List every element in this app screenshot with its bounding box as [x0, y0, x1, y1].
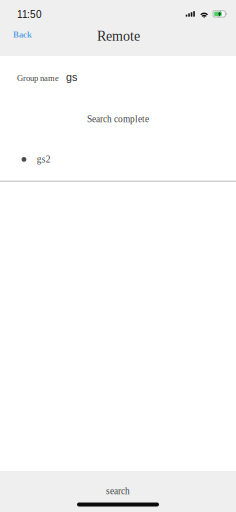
button[interactable]: search	[0, 478, 236, 504]
staticText: 11:50	[17, 9, 42, 20]
staticText: search	[106, 486, 130, 496]
button[interactable]: Back	[0, 20, 57, 48]
staticText: Back	[13, 30, 32, 39]
staticText: Search complete	[87, 114, 149, 124]
staticText: Group name	[17, 73, 59, 83]
staticText: gs	[66, 71, 77, 83]
staticText: Remote	[97, 28, 140, 44]
staticText: gs2	[37, 154, 51, 164]
